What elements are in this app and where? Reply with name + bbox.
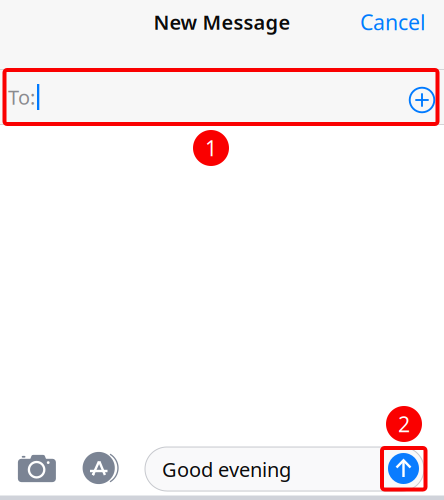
staticText: 2 [398, 410, 410, 438]
button[interactable]: To: [0, 70, 444, 124]
staticText: 1 [205, 134, 217, 162]
staticText: Cancel [360, 8, 426, 36]
staticText: To: [8, 84, 35, 110]
staticText: New Message [153, 9, 290, 35]
button[interactable]: Camera [18, 451, 58, 481]
button[interactable]: Add contact [408, 83, 444, 111]
button[interactable]: Send [387, 452, 419, 484]
button[interactable]: Apps [82, 451, 122, 485]
button[interactable]: Cancel [360, 0, 444, 44]
staticText: Good evening [162, 456, 291, 483]
button[interactable]: Good evening [145, 447, 424, 491]
